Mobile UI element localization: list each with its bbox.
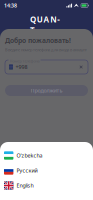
button[interactable]: English xyxy=(0,178,93,193)
staticText: Добро пожаловать! xyxy=(5,36,71,45)
button[interactable]: O'zbekcha xyxy=(0,148,93,163)
staticText: QUANT xyxy=(30,14,63,25)
staticText: 14:38 xyxy=(4,2,17,9)
staticText: Продолжить xyxy=(30,87,62,94)
button[interactable]: Продолжить xyxy=(5,85,88,96)
staticText: O'zbekcha xyxy=(17,152,43,159)
staticText: Введите номер телефона для входа в аккау… xyxy=(5,47,87,52)
button[interactable]: Clear phone number xyxy=(78,64,84,70)
button[interactable]: Русский xyxy=(0,163,93,178)
staticText: Русский xyxy=(17,167,38,174)
staticText: English xyxy=(17,182,34,189)
staticText: +998 xyxy=(16,63,28,71)
